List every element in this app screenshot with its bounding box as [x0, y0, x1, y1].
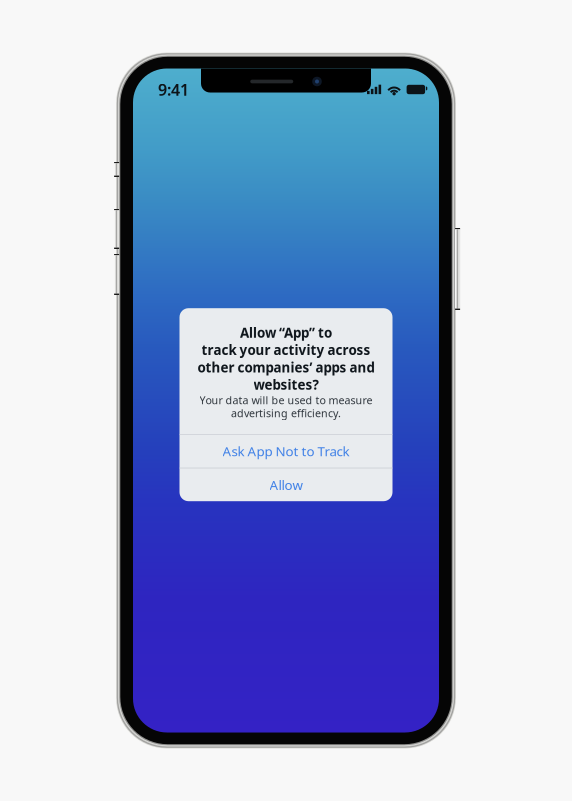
staticText: Allow “App” to: [240, 324, 332, 341]
button[interactable]: Allow: [179, 468, 392, 501]
staticText: 9:41: [158, 79, 189, 100]
staticText: websites?: [253, 376, 318, 393]
staticText: track your activity across: [201, 341, 370, 359]
staticText: Your data will be used to measure: [199, 393, 372, 407]
staticText: other companies’ apps and: [197, 358, 374, 376]
staticText: Ask App Not to Track: [222, 442, 349, 460]
staticText: Allow: [269, 476, 302, 494]
staticText: advertising efficiency.: [231, 406, 341, 420]
button[interactable]: Ask App Not to Track: [179, 435, 392, 468]
